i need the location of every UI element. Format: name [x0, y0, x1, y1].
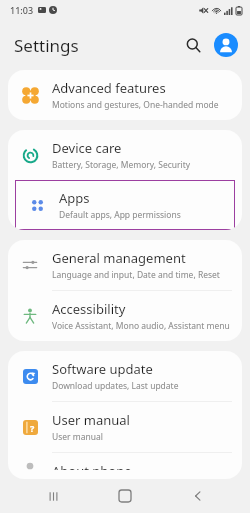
button[interactable]: General management — [8, 240, 242, 290]
staticText: User manual — [52, 431, 103, 443]
staticText: Battery, Storage, Memory, Security — [52, 159, 191, 171]
button[interactable]: Home — [105, 479, 145, 513]
staticText: Apps — [59, 189, 90, 207]
staticText: ? — [30, 422, 35, 434]
button[interactable]: Search — [178, 30, 208, 60]
staticText: Voice Assistant, Mono audio, Assistant m… — [52, 320, 230, 332]
button[interactable]: Accessibility — [8, 291, 242, 341]
staticText: User manual — [52, 411, 130, 429]
staticText: General management — [52, 249, 186, 267]
button[interactable]: About phone — [8, 453, 242, 479]
staticText: Download updates, Last update — [52, 380, 179, 392]
button[interactable]: ? — [8, 402, 242, 452]
button[interactable]: Device care — [8, 130, 242, 180]
staticText: Software update — [52, 360, 153, 378]
button[interactable]: Software update — [8, 351, 242, 401]
button[interactable]: Recents — [33, 479, 73, 513]
staticText: Device care — [52, 139, 122, 157]
button[interactable]: Apps — [15, 180, 235, 230]
staticText: Settings — [14, 34, 79, 57]
button[interactable]: Advanced features — [8, 70, 242, 120]
staticText: Motions and gestures, One-handed mode — [52, 99, 219, 111]
staticText: Language and input, Date and time, Reset — [52, 269, 220, 281]
staticText: About phone — [52, 462, 132, 470]
button[interactable]: Back — [178, 479, 218, 513]
staticText: Default apps, App permissions — [59, 209, 181, 221]
staticText: Accessibility — [52, 300, 126, 318]
staticText: 11:03 — [10, 4, 34, 16]
button[interactable]: Account — [214, 33, 238, 57]
staticText: Advanced features — [52, 79, 166, 97]
